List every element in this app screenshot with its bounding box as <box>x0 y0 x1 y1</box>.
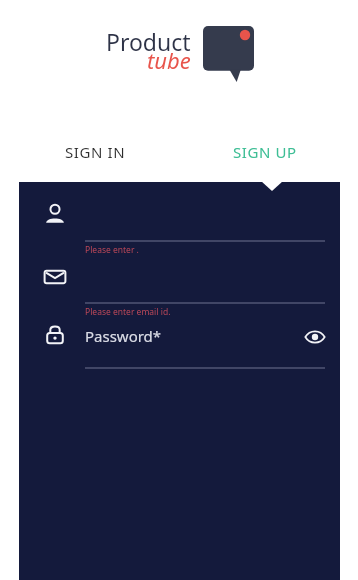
staticText: SIGN UP <box>233 142 297 162</box>
staticText: Password* <box>85 326 162 346</box>
button[interactable]: SIGN IN <box>40 132 160 172</box>
button[interactable]: SIGN UP <box>222 132 332 172</box>
staticText: Please enter . <box>85 244 139 256</box>
staticText: SIGN IN <box>65 142 126 162</box>
button[interactable]: Password* <box>85 318 295 354</box>
staticText: Please enter email id. <box>85 306 171 318</box>
button[interactable]: Show password <box>297 319 333 355</box>
staticText: tube <box>147 45 191 75</box>
staticText: Product <box>106 26 191 57</box>
